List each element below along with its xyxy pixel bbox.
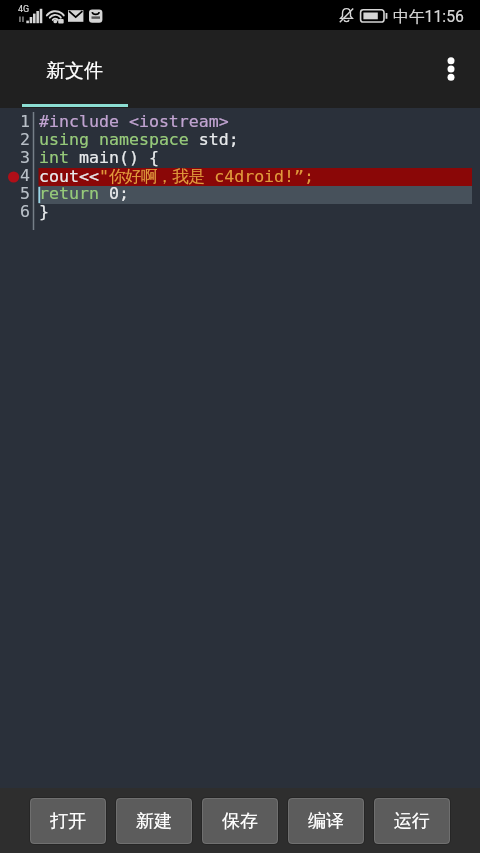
staticText: 3 bbox=[3, 148, 30, 167]
staticText: 4 bbox=[3, 166, 30, 185]
staticText: 新建 bbox=[136, 810, 172, 833]
staticText: 5 bbox=[3, 184, 30, 203]
staticText: 4G bbox=[18, 4, 30, 15]
button[interactable]: 运行 bbox=[374, 798, 450, 844]
staticText: cout<<"你好啊，我是 c4droid!”; bbox=[39, 166, 315, 187]
staticText: 2 bbox=[3, 130, 30, 149]
staticText: using namespace std; bbox=[39, 130, 239, 149]
button[interactable]: 保存 bbox=[202, 798, 278, 844]
staticText: 运行 bbox=[394, 810, 430, 833]
staticText: return 0; bbox=[39, 184, 129, 203]
staticText: int main() { bbox=[39, 148, 159, 167]
button[interactable]: 打开 bbox=[30, 798, 106, 844]
staticText: #include <iostream> bbox=[39, 112, 229, 131]
staticText: 新文件 bbox=[46, 59, 103, 83]
button[interactable]: 编译 bbox=[288, 798, 364, 844]
staticText: } bbox=[39, 202, 49, 221]
staticText: 编译 bbox=[308, 810, 344, 833]
button[interactable]: 新建 bbox=[116, 798, 192, 844]
staticText: 保存 bbox=[222, 810, 258, 833]
staticText: 打开 bbox=[50, 810, 86, 833]
staticText: 1 bbox=[3, 112, 30, 131]
staticText: 中午11:56 bbox=[393, 7, 464, 27]
staticText: 6 bbox=[3, 202, 30, 221]
button[interactable]: More options bbox=[431, 49, 471, 89]
